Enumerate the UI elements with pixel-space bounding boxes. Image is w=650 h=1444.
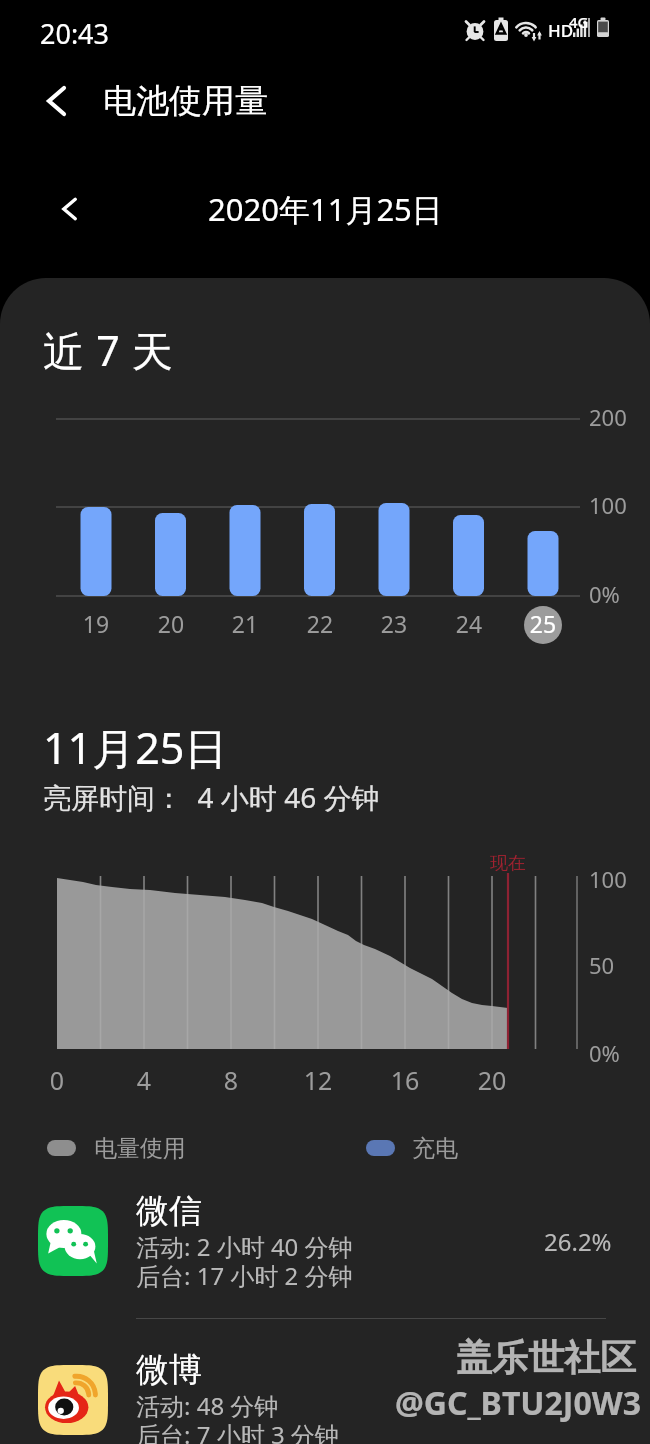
staticText: 亮屏时间： 4 小时 46 分钟 xyxy=(43,778,380,816)
staticText: 0 xyxy=(37,1063,77,1097)
staticText: 12 xyxy=(298,1063,338,1097)
staticText: 4G xyxy=(569,12,589,32)
staticText: HD xyxy=(548,19,574,42)
staticText: 26.2% xyxy=(544,1225,612,1258)
button[interactable]: 微博 xyxy=(0,1349,650,1444)
staticText: 4 xyxy=(124,1063,164,1097)
staticText: 电池使用量 xyxy=(103,80,268,122)
staticText: 21 xyxy=(225,608,265,639)
button[interactable]: 19 xyxy=(72,414,120,638)
staticText: 23 xyxy=(374,608,414,639)
staticText: 微信 xyxy=(136,1190,202,1232)
staticText: 22 xyxy=(300,608,340,639)
staticText: 50 xyxy=(589,950,615,980)
staticText: 20 xyxy=(151,608,191,639)
staticText: @GC_BTU2J0W3 xyxy=(395,1381,641,1425)
staticText: 24 xyxy=(449,608,489,639)
staticText: 盖乐世社区 xyxy=(456,1335,636,1380)
staticText: 0% xyxy=(589,1038,620,1068)
staticText: 现在 xyxy=(490,852,526,875)
staticText: 11月25日 xyxy=(43,718,228,777)
button[interactable]: 24 xyxy=(445,414,493,638)
staticText: 充电 xyxy=(412,1134,458,1163)
button[interactable]: 22 xyxy=(296,414,344,638)
button[interactable]: 23 xyxy=(370,414,418,638)
button[interactable]: Previous day xyxy=(48,187,92,231)
staticText: 后台: 17 小时 2 分钟 xyxy=(136,1259,353,1292)
button[interactable]: 充电 xyxy=(366,1127,506,1169)
button[interactable]: 20 xyxy=(147,414,195,638)
staticText: 0% xyxy=(589,579,620,609)
staticText: 电量使用 xyxy=(94,1134,186,1163)
staticText: 16 xyxy=(385,1063,425,1097)
staticText: 100 xyxy=(589,490,627,520)
staticText: 活动: 48 分钟 xyxy=(136,1389,279,1422)
staticText: 2020年11月25日 xyxy=(208,188,443,230)
button[interactable]: 25 xyxy=(519,414,567,638)
staticText: 20:43 xyxy=(40,15,110,52)
button[interactable]: Back xyxy=(32,76,82,126)
staticText: 微博 xyxy=(136,1349,202,1391)
staticText: 后台: 7 小时 3 分钟 xyxy=(136,1418,339,1444)
button[interactable]: 电量使用 xyxy=(47,1127,247,1169)
staticText: 8 xyxy=(211,1063,251,1097)
button[interactable]: 21 xyxy=(221,414,269,638)
staticText: 20 xyxy=(472,1063,512,1097)
staticText: 100 xyxy=(589,864,627,894)
staticText: 200 xyxy=(589,402,627,432)
staticText: 25 xyxy=(523,608,563,639)
staticText: 19 xyxy=(76,608,116,639)
staticText: 近 7 天 xyxy=(43,322,174,378)
staticText: 活动: 2 小时 40 分钟 xyxy=(136,1230,353,1263)
button[interactable]: 微信 xyxy=(0,1190,650,1330)
